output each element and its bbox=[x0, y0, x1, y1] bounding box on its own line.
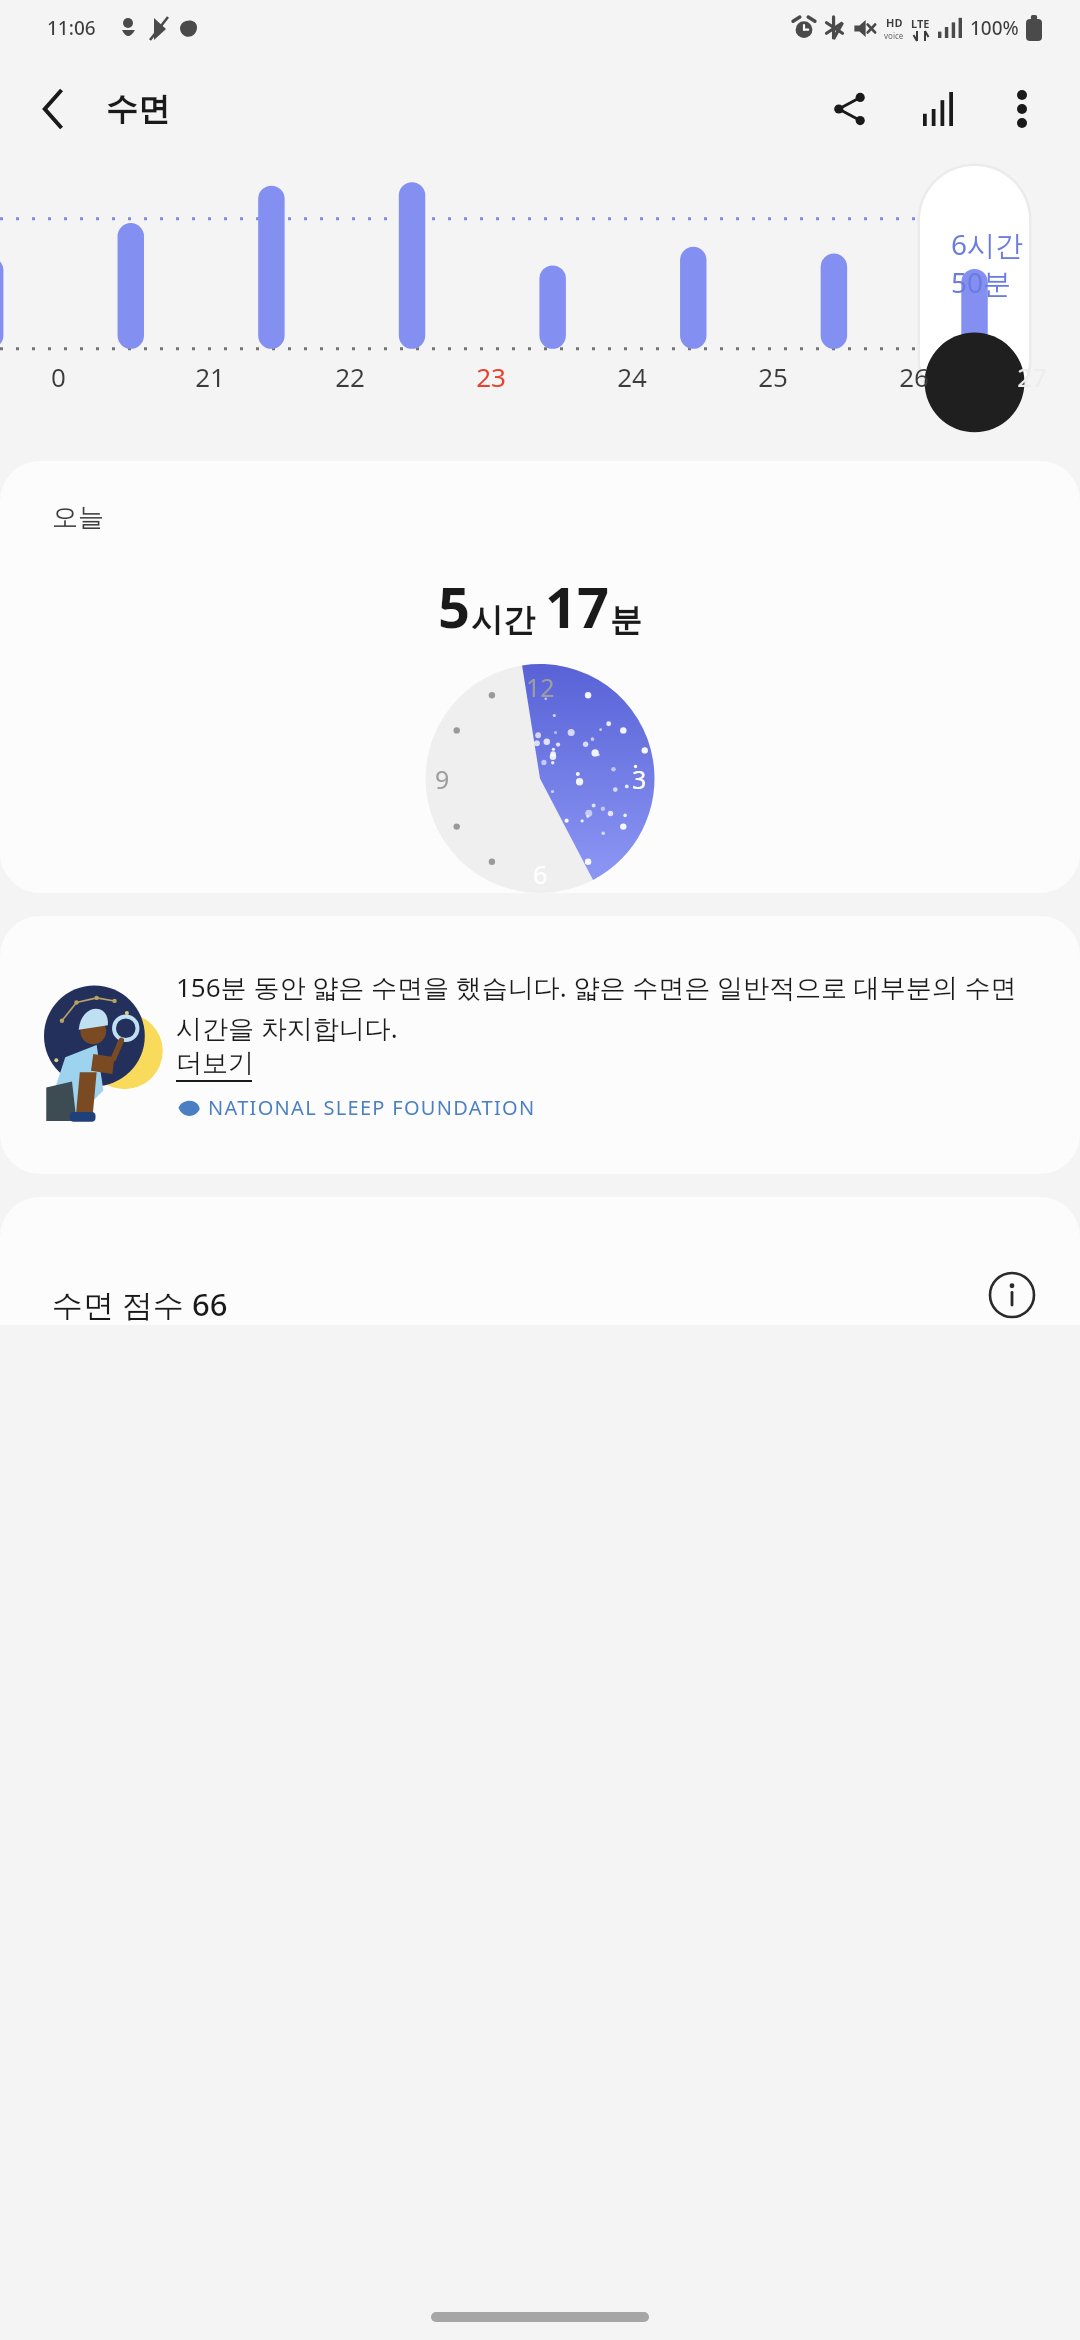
staticText: 156분 동안 얇은 수면을 했습니다. 얇은 수면은 일반적으로 대부분의 수… bbox=[176, 969, 1044, 1045]
staticText: 50분 bbox=[951, 263, 1012, 301]
button[interactable]: 수면 점수 66 bbox=[0, 1197, 1080, 1325]
button[interactable]: Chart bbox=[902, 73, 974, 145]
button[interactable]: More options bbox=[986, 73, 1058, 145]
staticText: 17 bbox=[545, 568, 610, 644]
staticText: 24 bbox=[617, 359, 647, 394]
button[interactable]: Info bbox=[984, 1267, 1040, 1323]
staticText: 100% bbox=[970, 15, 1019, 41]
button[interactable]: 오늘 bbox=[0, 461, 1080, 893]
staticText: 27 bbox=[1017, 359, 1047, 394]
staticText: 6시간 bbox=[951, 225, 1024, 263]
staticText: 23 bbox=[476, 359, 506, 394]
staticText: LTE bbox=[911, 16, 930, 31]
staticText: voice bbox=[884, 30, 904, 41]
staticText: 26 bbox=[899, 359, 929, 394]
staticText: 21 bbox=[195, 359, 225, 394]
staticText: 더보기 bbox=[176, 1047, 254, 1080]
staticText: 오늘 bbox=[52, 501, 104, 534]
staticText: 5 bbox=[438, 568, 471, 644]
staticText: 12 bbox=[526, 670, 555, 704]
button[interactable]: Back bbox=[20, 76, 86, 142]
staticText: 수면 점수 66 bbox=[52, 1283, 228, 1325]
button[interactable]: 더보기 bbox=[176, 1047, 254, 1082]
staticText: 3 bbox=[632, 762, 647, 796]
button[interactable]: 156분 동안 얇은 수면을 했습니다. 얇은 수면은 일반적으로 대부분의 수… bbox=[0, 916, 1080, 1174]
staticText: 수면 bbox=[106, 89, 170, 129]
staticText: 22 bbox=[335, 359, 365, 394]
staticText: HD bbox=[886, 15, 903, 30]
staticText: 시간 bbox=[471, 600, 535, 640]
staticText: NATIONAL SLEEP FOUNDATION bbox=[208, 1094, 536, 1121]
button[interactable]: Share bbox=[814, 73, 886, 145]
staticText: 6 bbox=[533, 857, 548, 891]
staticText: 분 bbox=[610, 600, 642, 640]
staticText: 9 bbox=[435, 762, 450, 796]
staticText: 11:06 bbox=[47, 15, 96, 41]
staticText: 25 bbox=[758, 359, 788, 394]
staticText: 0 bbox=[51, 359, 66, 394]
